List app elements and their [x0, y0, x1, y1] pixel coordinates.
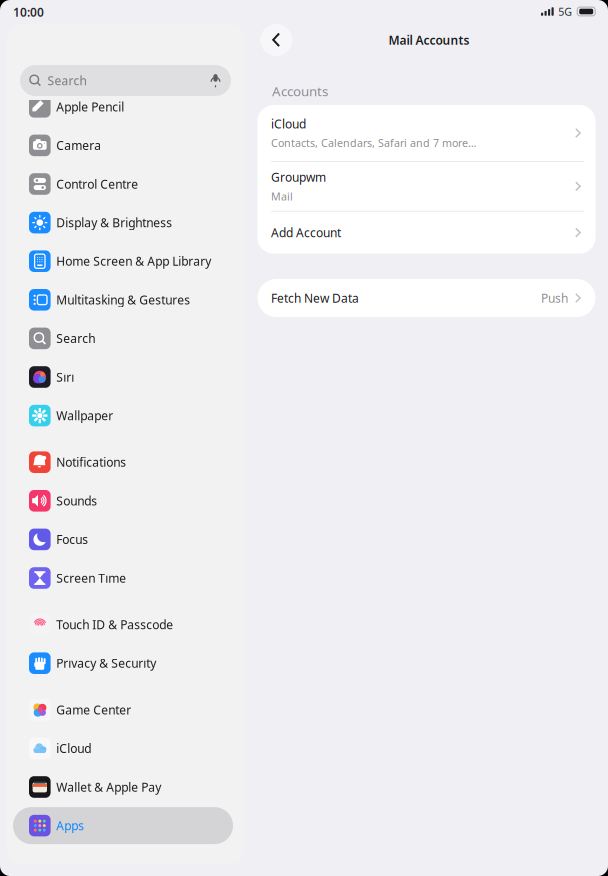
staticText: Camera: [56, 137, 101, 153]
staticText: Focus: [56, 531, 88, 547]
staticText: Touch ID & Passcode: [56, 617, 173, 632]
button[interactable]: Home Screen & App Library: [13, 242, 233, 280]
button[interactable]: Display & Brightness: [13, 203, 233, 242]
button[interactable]: Notifications: [13, 443, 233, 481]
button[interactable]: Game Center: [13, 690, 233, 729]
staticText: Search: [47, 72, 86, 88]
button[interactable]: Search: [20, 65, 231, 96]
staticText: Multitasking & Gestures: [56, 292, 190, 308]
staticText: Fetch New Data: [271, 290, 359, 306]
button[interactable]: Fetch New Data: [257, 279, 595, 317]
button[interactable]: Add Account: [257, 212, 595, 254]
button[interactable]: iCloud: [13, 729, 233, 768]
button[interactable]: Wallet & Apple Pay: [13, 768, 233, 806]
staticText: Notifications: [56, 454, 126, 470]
button[interactable]: Wallpaper: [13, 396, 233, 435]
staticText: Screen Time: [56, 570, 126, 586]
button[interactable]: Apps: [13, 806, 233, 845]
staticText: Privacy & Security: [56, 655, 156, 671]
button[interactable]: Touch ID & Passcode: [13, 605, 233, 644]
button[interactable]: Camera: [13, 126, 233, 165]
button[interactable]: Privacy & Security: [13, 644, 233, 682]
staticText: 10:00: [13, 4, 44, 20]
staticText: Push: [541, 290, 568, 306]
button[interactable]: Sounds: [13, 481, 233, 520]
staticText: Apple Pencil: [56, 99, 124, 115]
button[interactable]: Focus: [13, 520, 233, 559]
button[interactable]: Screen Time: [13, 559, 233, 597]
button[interactable]: Groupwm: [257, 162, 595, 211]
staticText: Contacts, Calendars, Safari and 7 more…: [271, 136, 476, 150]
staticText: Mail Accounts: [388, 32, 469, 48]
button[interactable]: Control Centre: [13, 165, 233, 203]
staticText: Apps: [56, 818, 84, 833]
button[interactable]: Search: [13, 319, 233, 358]
staticText: iCloud: [271, 116, 306, 132]
staticText: Sounds: [56, 493, 97, 509]
staticText: iCloud: [56, 740, 91, 756]
staticText: Display & Brightness: [56, 215, 172, 230]
staticText: Accounts: [272, 82, 328, 100]
staticText: Search: [56, 330, 95, 346]
staticText: Wallet & Apple Pay: [56, 779, 161, 795]
button[interactable]: Siri: [13, 358, 233, 396]
button[interactable]: Apple Pencil: [13, 87, 233, 126]
staticText: Mail: [271, 189, 293, 203]
staticText: Home Screen & App Library: [56, 253, 211, 269]
staticText: Game Center: [56, 702, 131, 718]
button[interactable]: iCloud: [257, 105, 595, 161]
staticText: Add Account: [271, 225, 341, 240]
staticText: Siri: [56, 369, 74, 385]
button[interactable]: Back: [260, 24, 292, 56]
staticText: 5G: [558, 4, 572, 19]
staticText: Wallpaper: [56, 408, 113, 423]
staticText: Control Centre: [56, 176, 138, 192]
staticText: Groupwm: [271, 169, 326, 185]
button[interactable]: Multitasking & Gestures: [13, 280, 233, 319]
